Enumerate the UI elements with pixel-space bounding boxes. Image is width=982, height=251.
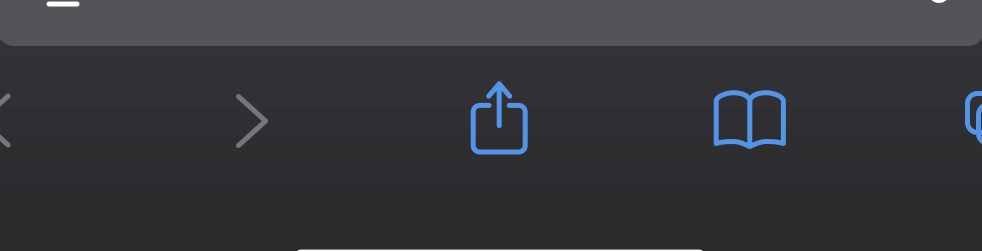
button[interactable]: Share <box>0 0 982 251</box>
button[interactable]: Tabs <box>0 0 982 251</box>
button[interactable]: Bookmarks <box>0 0 982 251</box>
button[interactable]: Back <box>0 0 982 251</box>
button[interactable]: Forward <box>0 0 982 251</box>
